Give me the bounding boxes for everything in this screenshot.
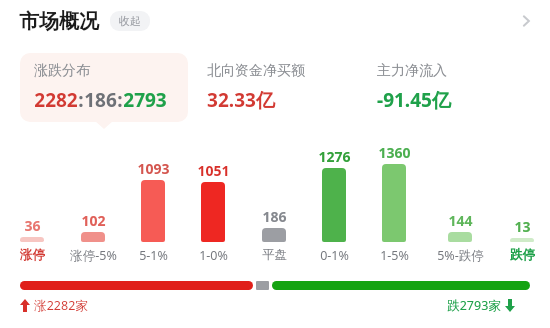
staticText: -91.45亿 [377,87,451,113]
staticText: 1-0% [199,247,228,264]
staticText: 跌2793家 [447,297,501,314]
staticText: 跌停 [510,247,535,263]
staticText: 186 [84,87,117,113]
button[interactable]: 跌2793家 [447,297,515,314]
staticText: 1093 [137,159,170,178]
staticText: 北向资金净买额 [207,62,305,80]
staticText: 144 [448,211,473,230]
staticText: : [117,87,123,113]
staticText: 102 [81,211,106,230]
staticText: 1051 [197,161,230,180]
staticText: 涨停 [20,247,45,263]
staticText: 主力净流入 [377,62,447,80]
staticText: 市场概况 [19,9,99,34]
staticText: 2793 [123,87,167,113]
staticText: 2282 [34,87,78,113]
staticText: 收起 [119,14,141,28]
staticText: 32.33亿 [207,87,275,113]
button[interactable]: 收起 [110,11,150,31]
staticText: 13 [514,217,531,236]
button[interactable]: 涨跌分布 [20,53,188,122]
staticText: 平盘 [262,247,287,263]
staticText: 186 [262,207,287,226]
button[interactable]: More [506,1,546,41]
staticText: 5%-跌停 [437,247,484,264]
button[interactable]: 北向资金净买额 [193,53,358,122]
staticText: 1276 [318,147,351,166]
staticText: 1360 [378,143,411,162]
staticText: 涨跌分布 [34,62,90,80]
button[interactable]: 主力净流入 [363,53,530,122]
staticText: 1-5% [380,247,409,264]
staticText: 涨停-5% [70,247,117,264]
staticText: 0-1% [320,247,349,264]
staticText: 5-1% [139,247,168,264]
staticText: 涨2282家 [34,297,88,314]
staticText: 36 [24,216,41,235]
staticText: : [78,87,84,113]
button[interactable]: 涨2282家 [20,297,88,314]
